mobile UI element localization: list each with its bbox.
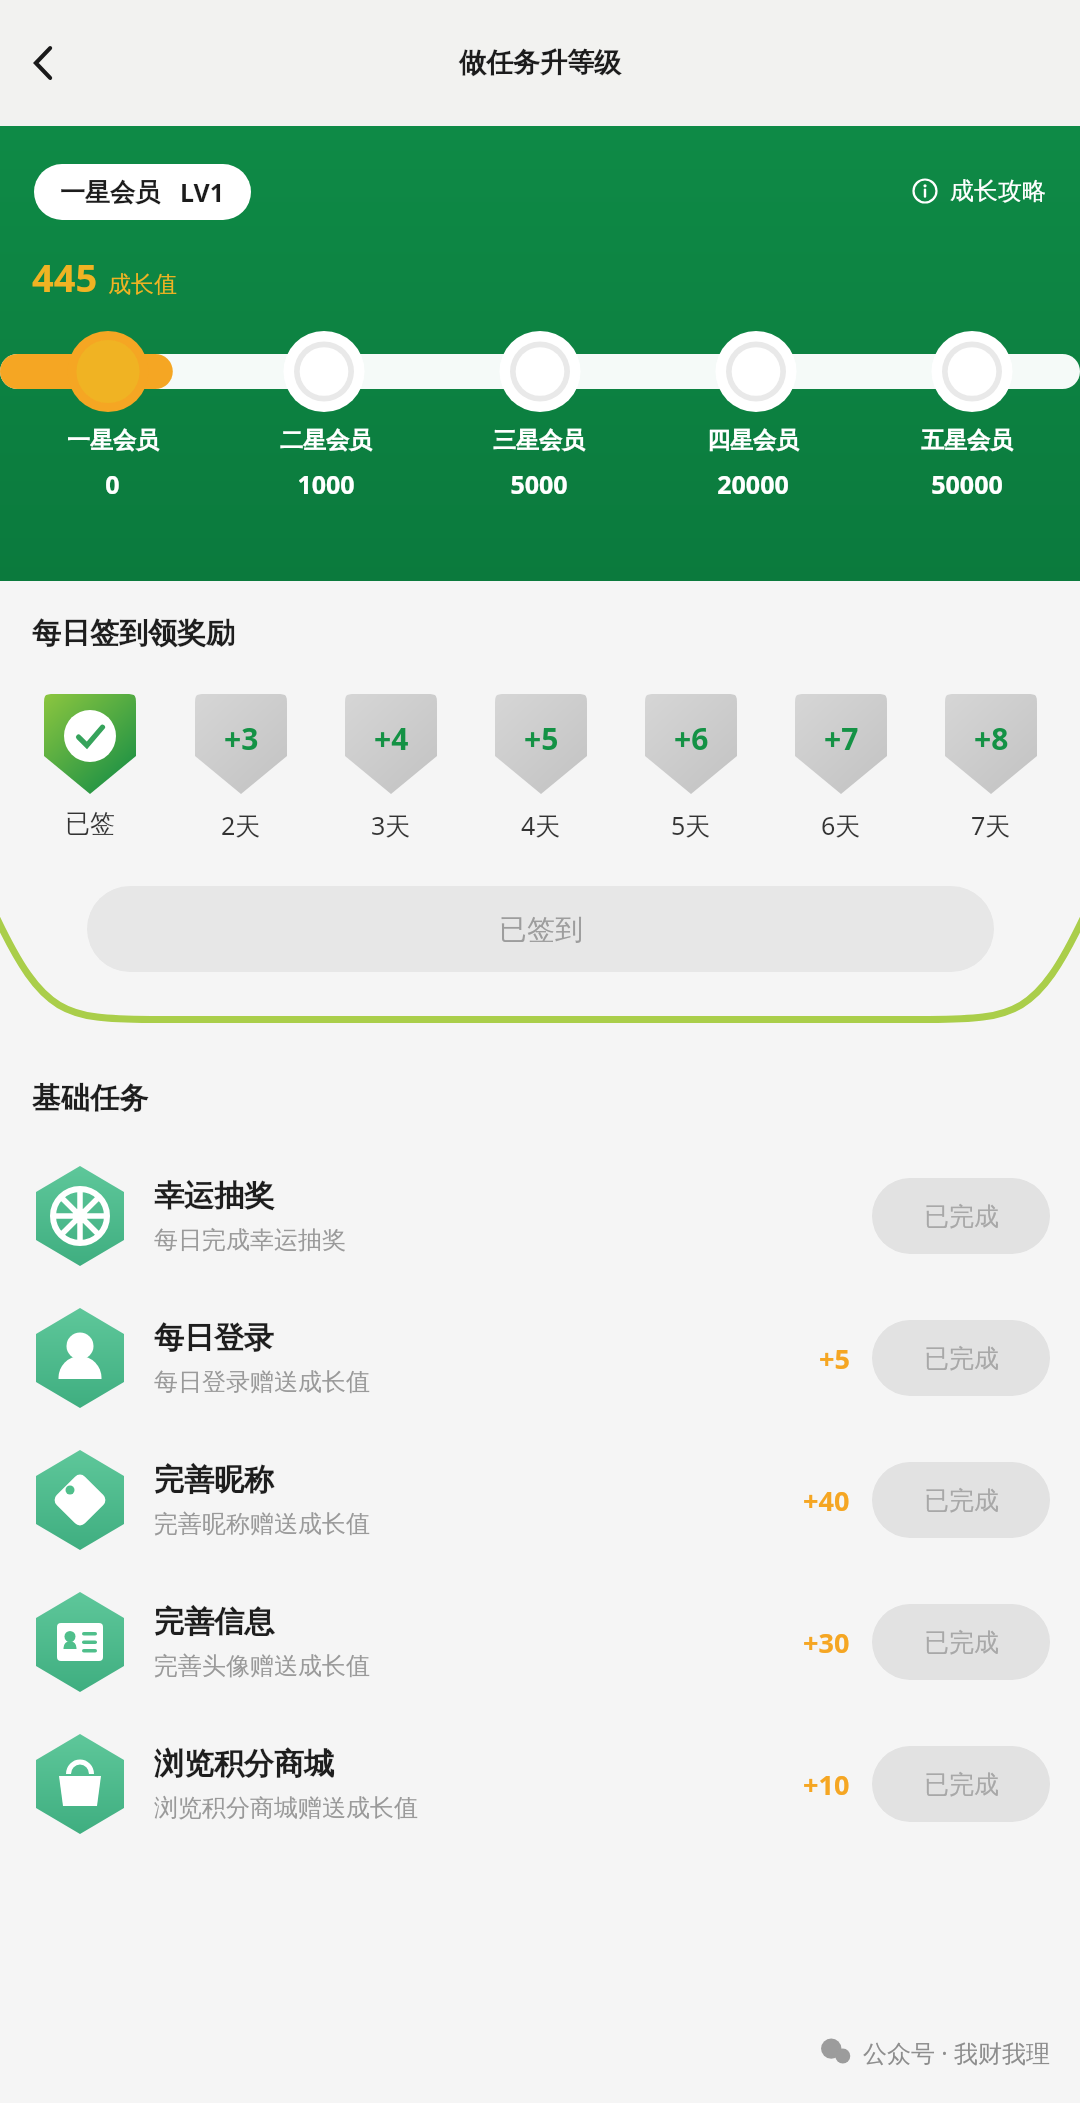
button[interactable]: 已完成 <box>872 1462 1050 1538</box>
button[interactable]: 一星会员 <box>34 164 251 220</box>
staticText: 已完成 <box>924 1485 999 1516</box>
staticText: 做任务升等级 <box>459 46 621 80</box>
staticText: 7天 <box>971 808 1011 842</box>
staticText: 已完成 <box>924 1201 999 1232</box>
staticText: 已签到 <box>499 912 583 947</box>
staticText: 一星会员 <box>60 177 160 208</box>
staticText: 已完成 <box>924 1343 999 1374</box>
staticText: 3天 <box>371 808 411 842</box>
staticText: 2天 <box>221 808 261 842</box>
button[interactable]: 已签 <box>14 694 165 839</box>
staticText: +3 <box>224 718 259 759</box>
staticText: +6 <box>674 718 709 759</box>
staticText: 完善头像赠送成长值 <box>154 1651 370 1681</box>
button[interactable]: 已签到 <box>87 886 994 972</box>
staticText: 基础任务 <box>32 1080 148 1117</box>
button[interactable]: 完善信息 <box>0 1571 1080 1713</box>
staticText: +4 <box>374 718 409 759</box>
staticText: +5 <box>524 718 559 759</box>
button[interactable]: 浏览积分商城 <box>0 1713 1080 1855</box>
staticText: 完善信息 <box>154 1603 274 1641</box>
staticText: +7 <box>824 718 859 759</box>
button[interactable]: 完善昵称 <box>0 1429 1080 1571</box>
staticText: 6天 <box>821 808 861 842</box>
staticText: 445 <box>32 251 98 303</box>
staticText: +10 <box>803 1766 850 1803</box>
staticText: 浏览积分商城 <box>154 1745 334 1783</box>
staticText: 0 <box>105 467 120 501</box>
staticText: 20000 <box>717 467 789 501</box>
staticText: 已签 <box>65 808 115 839</box>
staticText: 三星会员 <box>493 426 585 455</box>
staticText: 成长值 <box>108 270 177 299</box>
staticText: 成长攻略 <box>950 176 1046 206</box>
staticText: 每日登录赠送成长值 <box>154 1367 370 1397</box>
button[interactable]: 每日登录 <box>0 1287 1080 1429</box>
staticText: 已完成 <box>924 1769 999 1800</box>
button[interactable]: +5 <box>466 694 616 842</box>
staticText: 完善昵称赠送成长值 <box>154 1509 370 1539</box>
button[interactable]: 已完成 <box>872 1320 1050 1396</box>
button[interactable]: 已完成 <box>872 1746 1050 1822</box>
staticText: 完善昵称 <box>154 1461 274 1499</box>
staticText: 五星会员 <box>921 426 1013 455</box>
button[interactable]: 成长攻略 <box>906 170 1052 212</box>
button[interactable]: 已完成 <box>872 1178 1050 1254</box>
staticText: 公众号 · 我财我理 <box>863 2036 1050 2069</box>
staticText: 5天 <box>671 808 711 842</box>
staticText: 浏览积分商城赠送成长值 <box>154 1793 418 1823</box>
staticText: 1000 <box>297 467 355 501</box>
button[interactable]: 已完成 <box>872 1604 1050 1680</box>
staticText: 5000 <box>510 467 568 501</box>
staticText: 幸运抽奖 <box>154 1177 274 1215</box>
staticText: +30 <box>803 1624 850 1661</box>
button[interactable]: +7 <box>766 694 916 842</box>
staticText: 每日完成幸运抽奖 <box>154 1225 346 1255</box>
staticText: 每日登录 <box>154 1319 274 1357</box>
staticText: 一星会员 <box>67 426 159 455</box>
button[interactable]: +3 <box>165 694 316 842</box>
staticText: 二星会员 <box>280 426 372 455</box>
staticText: +5 <box>819 1340 850 1377</box>
staticText: LV1 <box>180 175 225 209</box>
staticText: 50000 <box>931 467 1003 501</box>
button[interactable]: 幸运抽奖 <box>0 1145 1080 1287</box>
button[interactable]: +4 <box>316 694 466 842</box>
button[interactable]: Back <box>12 31 76 95</box>
staticText: 已完成 <box>924 1627 999 1658</box>
staticText: 四星会员 <box>707 426 799 455</box>
button[interactable]: +8 <box>916 694 1066 842</box>
staticText: 4天 <box>521 808 561 842</box>
staticText: +8 <box>974 718 1009 759</box>
staticText: +40 <box>803 1482 850 1519</box>
button[interactable]: +6 <box>616 694 766 842</box>
staticText: 每日签到领奖励 <box>32 615 235 652</box>
